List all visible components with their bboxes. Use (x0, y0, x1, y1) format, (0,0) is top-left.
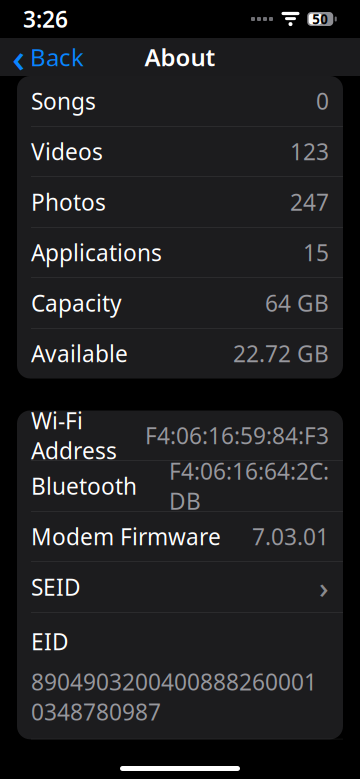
staticText: 15 (303, 237, 329, 267)
staticText: 64 GB (265, 288, 329, 318)
staticText: ‹ (12, 30, 25, 83)
staticText: Bluetooth (31, 471, 137, 501)
button[interactable]: SEID (17, 562, 343, 612)
staticText: 247 (290, 187, 329, 217)
staticText: Photos (31, 187, 106, 217)
staticText: Applications (31, 237, 162, 267)
staticText: SEID (31, 572, 81, 602)
staticText: Wi-Fi Address (31, 405, 117, 466)
staticText: About (144, 41, 215, 73)
staticText: 22.72 GB (233, 338, 329, 368)
button[interactable]: ‹ (2, 35, 94, 79)
staticText: Modem Firmware (31, 521, 221, 551)
staticText: F4:06:16:59:84:F3 (145, 420, 329, 450)
staticText: 89049032004008882600010348780987 (31, 667, 317, 727)
staticText: › (319, 567, 329, 606)
staticText: Available (31, 338, 128, 368)
staticText: 3:26 (23, 4, 68, 34)
staticText: 50 (312, 10, 328, 28)
staticText: EID (31, 626, 69, 657)
staticText: F4:06:16:64:2C:DB (169, 456, 329, 516)
staticText: Songs (31, 86, 96, 116)
staticText: Capacity (31, 288, 122, 318)
staticText: Videos (31, 136, 103, 166)
staticText: Back (30, 41, 84, 73)
staticText: 0 (316, 86, 329, 116)
staticText: 7.03.01 (252, 521, 329, 551)
staticText: 123 (290, 136, 329, 166)
